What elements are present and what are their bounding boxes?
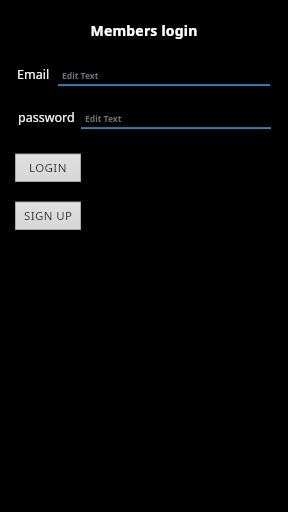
button[interactable]: SIGN UP: [15, 202, 81, 230]
button[interactable]: Edit Text: [58, 62, 270, 86]
staticText: Email: [17, 66, 50, 83]
staticText: Edit Text: [85, 113, 122, 125]
staticText: SIGN UP: [24, 208, 73, 224]
button[interactable]: Edit Text: [81, 105, 271, 129]
staticText: password: [18, 109, 75, 126]
staticText: Edit Text: [62, 70, 99, 82]
button[interactable]: LOGIN: [15, 154, 81, 182]
staticText: Members login: [0, 21, 288, 40]
staticText: LOGIN: [29, 160, 67, 176]
